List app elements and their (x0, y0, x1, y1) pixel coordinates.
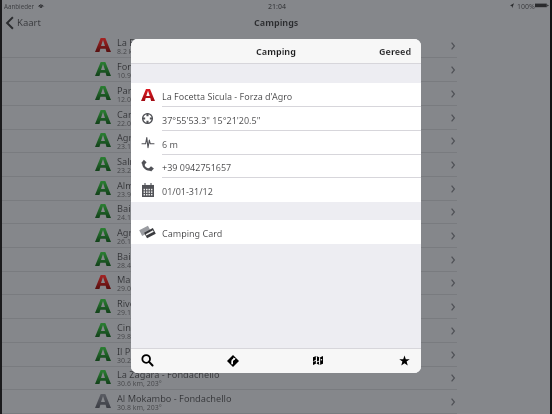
staticText: 24.1 km, 206° (117, 213, 162, 223)
staticText: La Focetta Sicula - Forza d'Agro (162, 90, 293, 102)
staticText: La Focetta Sicula - Sant'Alessio (117, 36, 248, 49)
button[interactable]: Search (131, 348, 168, 373)
staticText: 30.2 km, 212° (117, 356, 162, 366)
button[interactable]: Mareneve - Linguaglossa (0, 271, 552, 295)
staticText: 21:04 (268, 2, 286, 12)
staticText: Camping Almoetia - Alcantara (117, 108, 246, 121)
staticText: Gereed (379, 45, 412, 57)
button[interactable]: Salmastro - Riposto (0, 153, 552, 177)
staticText: 23.9 km, 207° (117, 190, 162, 200)
button[interactable]: 6 m (131, 131, 421, 155)
staticText: Camping (256, 45, 296, 57)
button[interactable]: La Zagara - Fondachello (0, 366, 552, 390)
button[interactable]: Cine Park - Acireale (0, 319, 552, 343)
button[interactable]: Favorites (383, 348, 421, 373)
staticText: Camping Card (162, 227, 223, 239)
button[interactable]: 01/01-31/12 (131, 178, 421, 202)
button[interactable]: Map (297, 348, 339, 373)
button[interactable]: Agricamping Bosco - Mascali (0, 129, 552, 153)
staticText: 6 m (162, 138, 178, 150)
staticText: 29.0 km, 215° (117, 284, 162, 294)
button[interactable]: Fontanarossa - Letojanni (0, 58, 552, 82)
button[interactable]: +39 0942751657 (131, 154, 421, 178)
button[interactable]: Baia del Sole - Mascali (0, 200, 552, 224)
button[interactable]: Camping Card (131, 220, 421, 244)
button[interactable]: Agrumeto - Fiumefreddo (0, 224, 552, 248)
staticText: Agricamping Bosco - Mascali (117, 131, 241, 144)
button[interactable]: Al Mokambo - Fondachello (0, 390, 552, 414)
button[interactable]: Directions (212, 348, 254, 373)
button[interactable]: Almoetia - Fiumefreddo (0, 177, 552, 201)
button[interactable]: Baia dei Saraceni - Giarre (0, 248, 552, 272)
staticText: Baia del Sole - Mascali (117, 202, 212, 215)
button[interactable]: Camping Almoetia - Alcantara (0, 106, 552, 130)
staticText: 26.1 km, 208° (117, 237, 162, 247)
staticText: Salmastro - Riposto (117, 155, 201, 168)
staticText: Agrumeto - Fiumefreddo (117, 226, 224, 239)
button[interactable]: Rivendell - Santa Venerina (0, 295, 552, 319)
staticText: Paradise - Taormina Mare (117, 84, 228, 97)
staticText: 10.9 km, 201° (117, 71, 162, 81)
staticText: 28.4 km, 209° (117, 261, 162, 271)
button[interactable]: Paradise - Taormina Mare (0, 82, 552, 106)
staticText: 01/01-31/12 (162, 185, 213, 197)
button[interactable]: La Focetta Sicula - Forza d'Agro (131, 83, 421, 107)
staticText: Rivendell - Santa Venerina (117, 297, 230, 310)
staticText: Mareneve - Linguaglossa (117, 273, 225, 286)
staticText: 100% (517, 2, 535, 12)
staticText: 30.6 km, 203° (117, 379, 162, 389)
staticText: Cine Park - Acireale (117, 321, 200, 334)
button[interactable]: Gereed (368, 39, 421, 64)
staticText: 29.1 km, 210° (117, 308, 162, 318)
staticText: 23.1 km, 206° (117, 142, 162, 152)
staticText: 12.0 km, 202° (117, 95, 162, 105)
staticText: 29.8 km, 211° (117, 332, 162, 342)
staticText: Kaart (17, 16, 41, 29)
button[interactable]: Il Pioppo - Acireale (0, 343, 552, 367)
staticText: Baia dei Saraceni - Giarre (117, 250, 225, 263)
button[interactable]: 37°55'53.3" 15°21'20.5" (131, 107, 421, 131)
staticText: Almoetia - Fiumefreddo (117, 179, 219, 192)
staticText: Campings (254, 16, 299, 28)
staticText: +39 0942751657 (162, 161, 232, 173)
staticText: La Zagara - Fondachello (117, 368, 220, 381)
staticText: 23.2 km, 205° (117, 166, 162, 176)
button[interactable]: La Focetta Sicula - Sant'Alessio (0, 34, 552, 58)
staticText: Fontanarossa - Letojanni (117, 60, 224, 73)
staticText: 22.0 km, 215° (117, 119, 162, 129)
button[interactable]: Kaart (6, 16, 41, 29)
staticText: Aanbieder (4, 2, 34, 10)
staticText: 30.8 km, 203° (117, 403, 162, 413)
staticText: Il Pioppo - Acireale (117, 345, 198, 358)
staticText: Al Mokambo - Fondachello (117, 392, 232, 405)
staticText: 37°55'53.3" 15°21'20.5" (162, 114, 261, 126)
staticText: 8.2 km, 197° (117, 47, 158, 57)
